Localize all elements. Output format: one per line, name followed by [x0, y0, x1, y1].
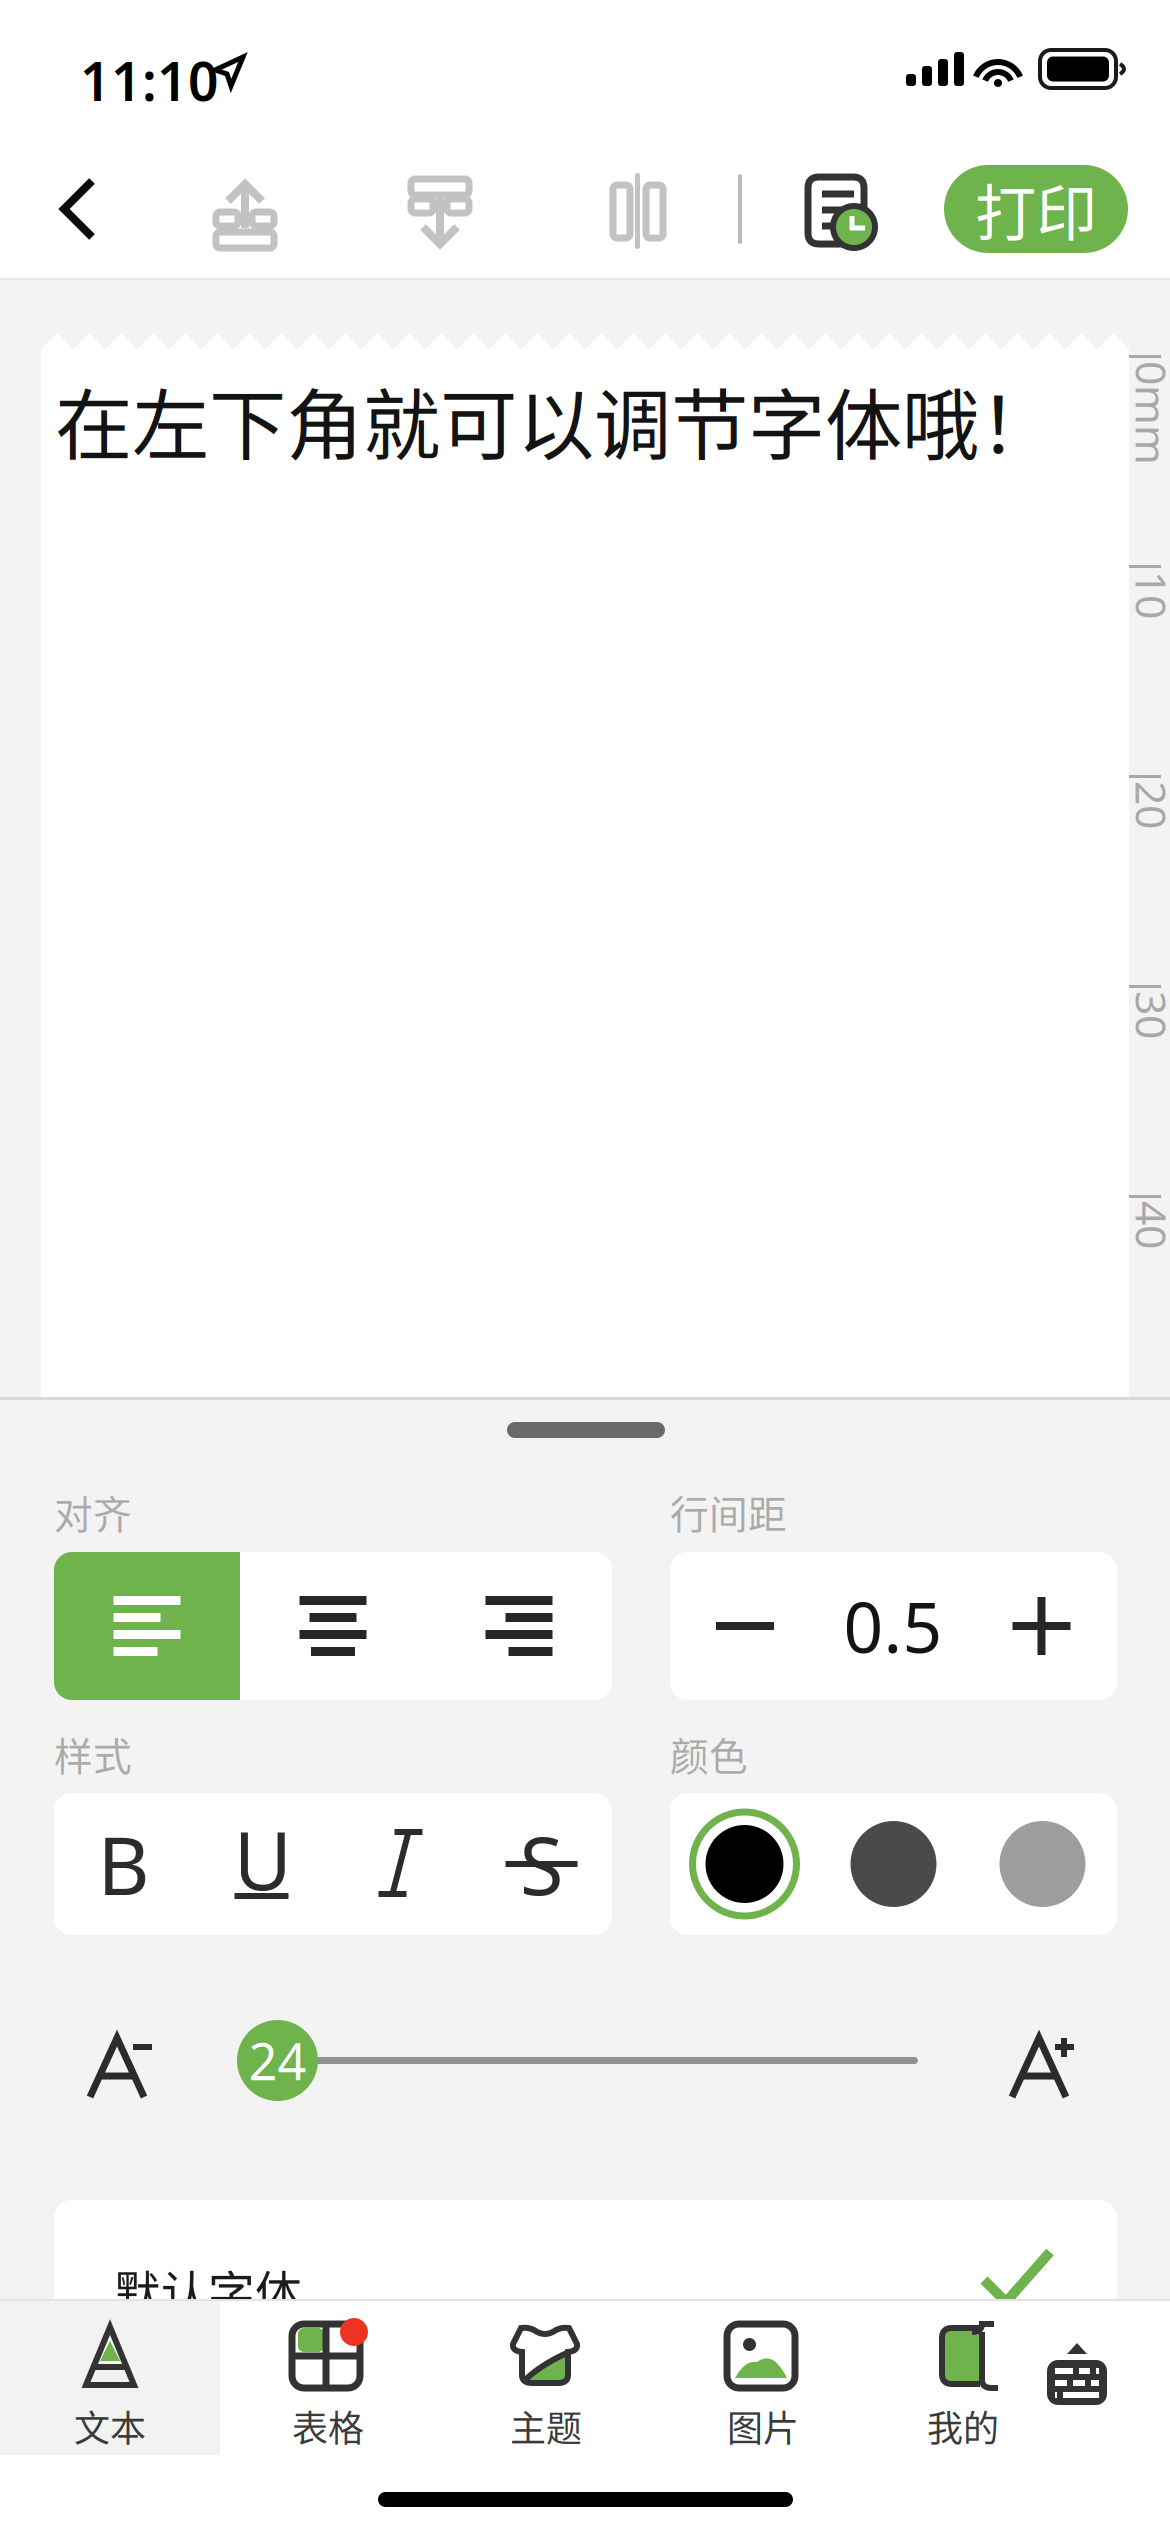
staticText: 行间距 [670, 1484, 787, 1540]
staticText: 30 [1087, 1028, 1135, 1084]
staticText: 0.5 [843, 1580, 942, 1672]
staticText: 对齐 [54, 1484, 132, 1540]
staticText: U [233, 1806, 291, 1912]
button[interactable]: 图片 [665, 2301, 861, 2457]
button[interactable]: 表格 [230, 2301, 426, 2457]
button[interactable]: Flip horizontally [583, 164, 693, 258]
button[interactable]: Decrease line spacing [670, 1552, 820, 1700]
button[interactable]: Dark grey [819, 1793, 968, 1935]
button[interactable]: Strikethrough [471, 1793, 612, 1935]
button[interactable]: Italic [332, 1793, 471, 1935]
staticText: 表格 [292, 2400, 364, 2452]
button[interactable]: Align right [426, 1552, 612, 1700]
button[interactable]: Send to back [385, 166, 495, 260]
staticText: 图片 [727, 2400, 799, 2452]
button[interactable]: Increase font size [994, 2019, 1094, 2119]
button[interactable]: Underline [193, 1793, 332, 1935]
button[interactable]: Grey [968, 1793, 1117, 1935]
staticText: 10 [1087, 608, 1135, 664]
button[interactable]: Align left [54, 1552, 240, 1700]
button[interactable]: Increase line spacing [966, 1552, 1117, 1700]
button[interactable]: 我的 [865, 2301, 1061, 2457]
staticText: 颜色 [670, 1726, 748, 1782]
staticText: 40 [1087, 1238, 1135, 1294]
button[interactable]: Bold [54, 1793, 193, 1935]
button[interactable]: Back [30, 162, 126, 256]
button[interactable]: Align center [240, 1552, 426, 1700]
button[interactable]: Black [670, 1793, 819, 1935]
button[interactable]: 文本 [0, 2301, 220, 2457]
staticText: 24 [248, 2027, 306, 2094]
staticText: 打印 [975, 165, 1097, 253]
staticText: 我的 [927, 2400, 999, 2452]
staticText: 文本 [74, 2400, 146, 2452]
staticText: 在左下角就可以调节字体哦！ [55, 364, 1056, 476]
staticText: 主题 [510, 2400, 582, 2452]
button[interactable]: 打印 [944, 165, 1128, 253]
button[interactable]: Decrease font size [72, 2019, 172, 2119]
button[interactable]: Bring to front [190, 167, 300, 261]
button[interactable]: Version history [785, 164, 895, 258]
staticText: B [97, 1811, 149, 1917]
staticText: 样式 [54, 1726, 132, 1782]
staticText: 20 [1087, 818, 1135, 874]
staticText: 11:10 [80, 45, 219, 116]
staticText: 默认字体 [114, 2256, 302, 2324]
staticText: 0mm [1087, 398, 1170, 454]
button[interactable]: 主题 [448, 2301, 644, 2457]
staticText: S [519, 1811, 563, 1917]
button[interactable]: Show keyboard [1022, 2319, 1132, 2429]
